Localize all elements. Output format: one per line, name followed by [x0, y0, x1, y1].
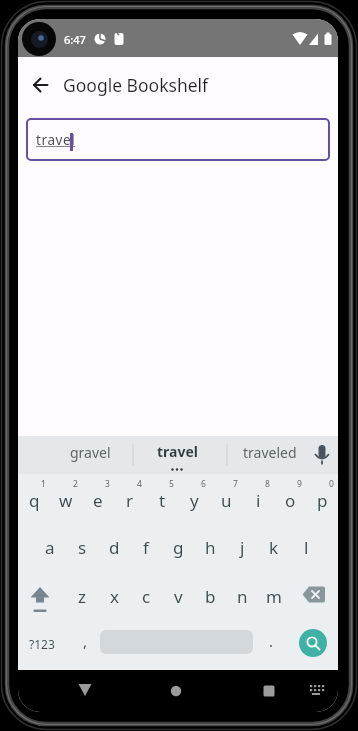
staticText: o [285, 489, 296, 512]
staticText: a [45, 536, 55, 559]
staticText: w [59, 489, 73, 512]
button[interactable]: u [210, 480, 242, 520]
button[interactable]: z [66, 576, 98, 616]
button[interactable]: j [226, 527, 258, 567]
button[interactable]: c [130, 576, 162, 616]
staticText: 6 [201, 478, 206, 490]
button[interactable]: q [18, 480, 50, 520]
staticText: j [240, 536, 245, 559]
button[interactable]: w [50, 480, 82, 520]
staticText: 1 [41, 478, 46, 490]
staticText: 6:47 [64, 32, 86, 47]
button[interactable]: ?123 [22, 626, 62, 662]
staticText: p [317, 489, 328, 512]
staticText: 3 [105, 478, 110, 490]
staticText: x [110, 585, 119, 608]
staticText: 0 [329, 478, 334, 490]
staticText: h [205, 536, 216, 559]
staticText: f [143, 536, 149, 559]
staticText: d [109, 536, 120, 559]
button[interactable] [299, 629, 327, 657]
button[interactable] [24, 580, 56, 612]
staticText: ?123 [29, 636, 55, 652]
staticText: z [78, 585, 86, 608]
button[interactable] [65, 680, 105, 704]
staticText: r [126, 489, 134, 512]
staticText: . [269, 631, 274, 651]
staticText: k [269, 536, 279, 559]
button[interactable]: e [82, 480, 114, 520]
staticText: gravel [70, 443, 111, 462]
staticText: v [174, 585, 183, 608]
staticText: n [237, 585, 248, 608]
staticText: q [29, 489, 40, 512]
staticText: 9 [297, 478, 302, 490]
button[interactable]: y [178, 480, 210, 520]
staticText: b [205, 585, 216, 608]
staticText: 4 [137, 478, 142, 490]
staticText: e [93, 489, 103, 512]
staticText: traveled [243, 443, 297, 462]
button[interactable]: gravel [45, 437, 135, 467]
button[interactable]: l [290, 527, 322, 567]
staticText: 8 [265, 478, 270, 490]
staticText: 2 [73, 478, 78, 490]
button[interactable]: g [162, 527, 194, 567]
button[interactable] [249, 680, 289, 704]
button[interactable]: d [98, 527, 130, 567]
staticText: , [83, 631, 88, 651]
staticText: g [173, 536, 184, 559]
button[interactable]: , [73, 623, 97, 659]
button[interactable]: r [114, 480, 146, 520]
button[interactable]: n [226, 576, 258, 616]
button[interactable]: p [306, 480, 338, 520]
button[interactable]: o [274, 480, 306, 520]
button[interactable] [301, 680, 331, 704]
button[interactable]: a [34, 527, 66, 567]
staticText: y [190, 489, 199, 512]
button[interactable]: travel [132, 437, 222, 465]
button[interactable]: traveled [228, 437, 312, 467]
button[interactable]: m [258, 576, 290, 616]
staticText: travel [157, 442, 198, 461]
staticText: i [256, 489, 261, 512]
button[interactable]: . [259, 623, 283, 659]
button[interactable]: i [242, 480, 274, 520]
staticText: c [142, 585, 151, 608]
button[interactable]: v [162, 576, 194, 616]
staticText: t [159, 489, 166, 512]
staticText: Google Bookshelf [63, 73, 209, 97]
button[interactable]: t [146, 480, 178, 520]
button[interactable]: travel [26, 118, 330, 161]
button[interactable]: s [66, 527, 98, 567]
button[interactable] [156, 680, 196, 704]
button[interactable]: f [130, 527, 162, 567]
staticText: s [78, 536, 87, 559]
staticText: u [221, 489, 232, 512]
button[interactable]: x [98, 576, 130, 616]
staticText: m [266, 585, 282, 608]
staticText: 7 [233, 478, 238, 490]
button[interactable] [298, 580, 332, 612]
staticText: travel [36, 131, 76, 149]
button[interactable] [25, 71, 53, 99]
button[interactable]: b [194, 576, 226, 616]
button[interactable]: k [258, 527, 290, 567]
staticText: 5 [169, 478, 174, 490]
button[interactable]: h [194, 527, 226, 567]
staticText: l [304, 536, 309, 559]
